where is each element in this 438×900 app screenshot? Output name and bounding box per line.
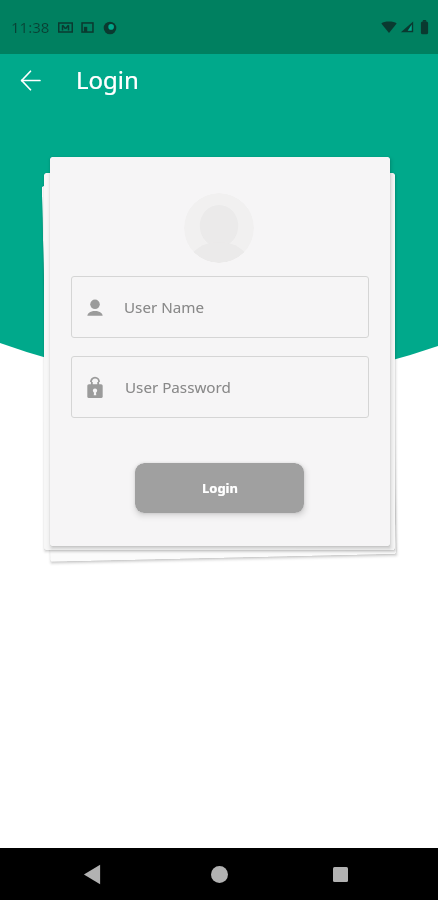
button[interactable]: Back xyxy=(68,850,116,898)
staticText: User Name xyxy=(124,297,204,318)
staticText: User Password xyxy=(125,377,231,398)
button[interactable]: Profile photo xyxy=(184,193,254,263)
button[interactable]: Login xyxy=(135,463,304,513)
staticText: 11:38 xyxy=(11,17,50,37)
button[interactable]: User Name xyxy=(71,276,369,338)
staticText: Login xyxy=(202,479,238,497)
button[interactable]: Home xyxy=(195,850,243,898)
button[interactable]: Recent apps xyxy=(316,850,364,898)
button[interactable]: Back xyxy=(6,58,54,106)
button[interactable]: User Password xyxy=(71,356,369,418)
staticText: Login xyxy=(76,63,139,96)
